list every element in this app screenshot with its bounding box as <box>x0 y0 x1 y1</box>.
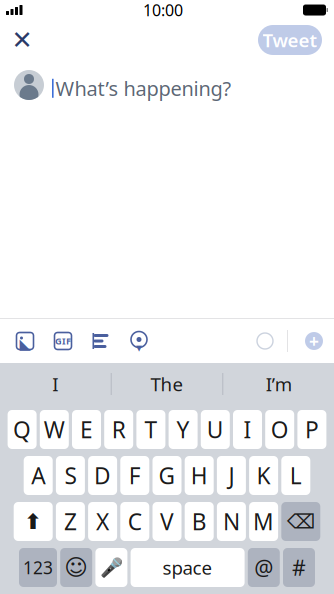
button[interactable]: ⬆ <box>14 502 53 541</box>
button[interactable]: B <box>185 502 214 541</box>
staticText: ☺ <box>64 555 88 580</box>
button[interactable]: A <box>24 456 53 495</box>
button[interactable]: Add location <box>120 324 158 358</box>
staticText: V <box>160 506 174 536</box>
staticText: Tweet <box>262 28 317 52</box>
staticText: ✕ <box>11 26 32 54</box>
button[interactable]: I <box>0 364 111 404</box>
button[interactable]: U <box>201 410 230 449</box>
button[interactable]: P <box>297 410 326 449</box>
staticText: ◣ <box>19 336 30 352</box>
staticText: B <box>192 506 207 536</box>
button[interactable]: 123 <box>19 548 57 587</box>
button[interactable]: I <box>233 410 262 449</box>
staticText: T <box>144 414 157 444</box>
button[interactable]: G <box>152 456 181 495</box>
button[interactable]: R <box>104 410 133 449</box>
staticText: GIF <box>55 335 71 347</box>
button[interactable]: Add poll <box>82 324 120 358</box>
button[interactable]: E <box>72 410 101 449</box>
button[interactable]: H <box>185 456 214 495</box>
button[interactable]: N <box>217 502 246 541</box>
staticText: D <box>94 460 111 490</box>
button[interactable]: Add photo <box>6 324 44 358</box>
staticText: ▾ <box>136 341 142 354</box>
staticText: I <box>243 414 251 444</box>
button[interactable]: O <box>265 410 294 449</box>
staticText: W <box>44 414 65 444</box>
staticText: @ <box>254 553 273 582</box>
staticText: E <box>80 414 93 444</box>
staticText: I’m <box>266 372 292 396</box>
staticText: K <box>257 460 271 490</box>
staticText: G <box>158 460 175 490</box>
staticText: Y <box>177 414 190 444</box>
button[interactable]: ☺ <box>60 548 92 587</box>
button[interactable]: Y <box>169 410 198 449</box>
button[interactable]: # <box>283 548 315 587</box>
staticText: 10:00 <box>143 0 183 21</box>
staticText: P <box>305 414 319 444</box>
button[interactable]: M <box>249 502 278 541</box>
button[interactable]: ⌫ <box>281 502 320 541</box>
button[interactable]: T <box>136 410 165 449</box>
staticText: # <box>292 553 306 582</box>
button[interactable]: W <box>40 410 69 449</box>
staticText: ⬆ <box>24 509 42 534</box>
staticText: H <box>191 460 208 490</box>
staticText: R <box>112 414 126 444</box>
staticText: 123 <box>23 556 53 579</box>
button[interactable]: space <box>131 548 245 587</box>
staticText: S <box>64 460 76 490</box>
staticText: A <box>31 460 45 490</box>
button[interactable]: J <box>217 456 246 495</box>
staticText: N <box>223 506 240 536</box>
staticText: X <box>96 506 109 536</box>
button[interactable]: L <box>281 456 310 495</box>
staticText: F <box>129 460 141 490</box>
staticText: 🎤 <box>100 557 123 578</box>
button[interactable]: S <box>56 456 85 495</box>
staticText: space <box>163 555 213 580</box>
button[interactable]: Tweet <box>258 25 322 55</box>
staticText: O <box>271 414 289 444</box>
staticText: ⌫ <box>287 510 315 533</box>
staticText: Z <box>64 506 77 536</box>
button[interactable]: The <box>111 364 222 404</box>
button[interactable]: @ <box>248 548 280 587</box>
button[interactable]: C <box>120 502 149 541</box>
button[interactable]: V <box>152 502 181 541</box>
staticText: C <box>128 506 142 536</box>
button[interactable]: D <box>88 456 117 495</box>
staticText: What’s happening? <box>56 75 232 102</box>
staticText: I <box>52 372 58 396</box>
button[interactable]: X <box>88 502 117 541</box>
button[interactable]: F <box>120 456 149 495</box>
staticText: The <box>150 372 183 396</box>
button[interactable]: I’m <box>223 364 334 404</box>
button[interactable]: Add tweet <box>300 324 328 358</box>
button[interactable]: K <box>249 456 278 495</box>
button[interactable]: Z <box>56 502 85 541</box>
staticText: J <box>228 460 234 490</box>
button[interactable]: Close <box>0 20 44 60</box>
staticText: Q <box>13 414 31 444</box>
button[interactable]: Add GIF <box>44 324 82 358</box>
staticText: + <box>309 329 319 352</box>
button[interactable]: Q <box>8 410 37 449</box>
button[interactable]: 🎤 <box>95 548 127 587</box>
staticText: L <box>290 460 302 490</box>
staticText: U <box>207 414 224 444</box>
staticText: M <box>253 506 274 536</box>
